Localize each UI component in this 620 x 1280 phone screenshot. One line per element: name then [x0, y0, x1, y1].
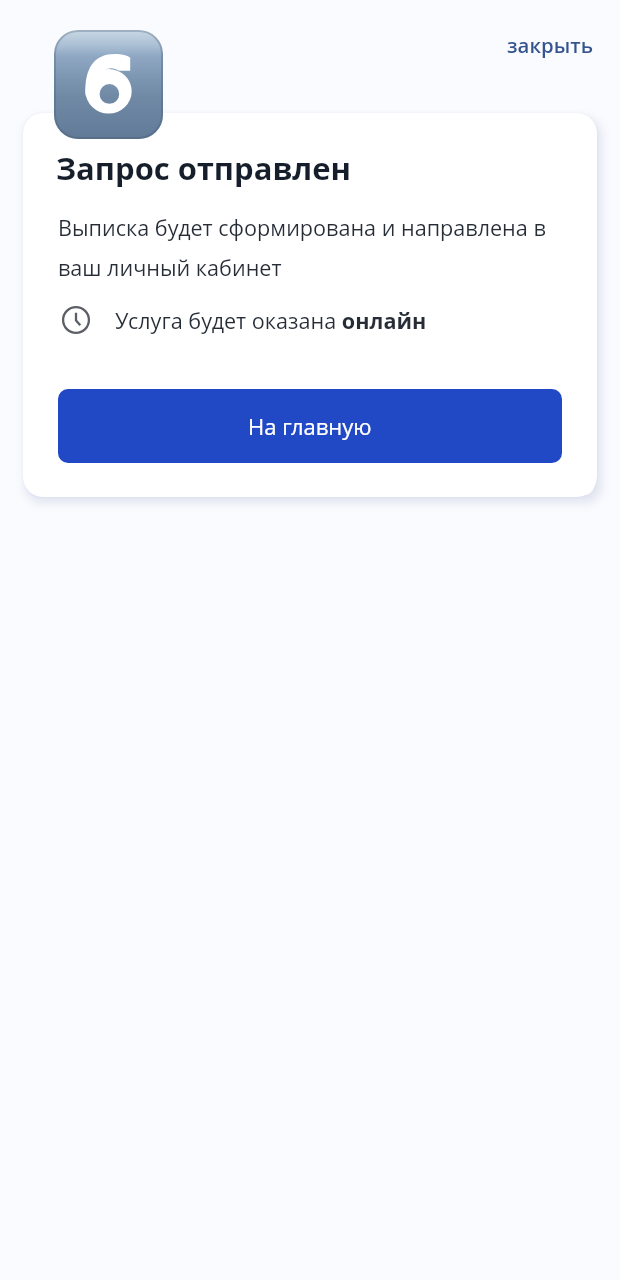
staticText: закрыть [507, 31, 593, 59]
other: Step 6 [54, 30, 163, 139]
button[interactable]: На главную [58, 389, 562, 463]
staticText: На главную [248, 411, 372, 441]
staticText: Выписка будет сформирована и направлена … [58, 213, 563, 283]
staticText: Услуга будет оказана онлайн [115, 306, 427, 335]
staticText: Запрос отправлен [56, 147, 352, 189]
button[interactable]: закрыть [496, 24, 604, 66]
